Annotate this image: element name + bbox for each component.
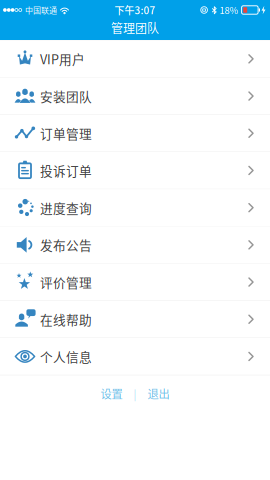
staticText: 投诉订单 (40, 161, 92, 180)
staticText: 个人信息 (40, 347, 92, 366)
staticText: 订单管理 (40, 124, 92, 142)
button[interactable]: 评价管理 (0, 264, 270, 300)
staticText: 管理团队 (111, 19, 159, 36)
staticText: 在线帮助 (40, 310, 92, 328)
button[interactable]: 投诉订单 (0, 152, 270, 189)
staticText: 发布公告 (40, 236, 92, 254)
staticText: 退出 (147, 385, 169, 402)
staticText: | (133, 386, 136, 401)
staticText: 安装团队 (40, 87, 92, 105)
staticText: 进度查询 (40, 198, 92, 217)
button[interactable]: 发布公告 (0, 226, 270, 263)
button[interactable]: 安装团队 (0, 78, 270, 114)
staticText: 评价管理 (40, 273, 92, 291)
button[interactable]: 订单管理 (0, 115, 270, 152)
button[interactable]: 在线帮助 (0, 301, 270, 338)
staticText: 中国联通 (25, 4, 57, 16)
button[interactable]: VIP用户 (0, 40, 270, 77)
button[interactable]: 个人信息 (0, 338, 270, 375)
staticText: 18% (220, 3, 239, 17)
button[interactable]: 进度查询 (0, 189, 270, 226)
staticText: 设置 (100, 385, 122, 402)
staticText: 下午3:07 (114, 3, 155, 17)
button[interactable]: 退出 (136, 380, 180, 407)
button[interactable]: 设置 (89, 380, 133, 407)
staticText: VIP用户 (40, 50, 85, 68)
